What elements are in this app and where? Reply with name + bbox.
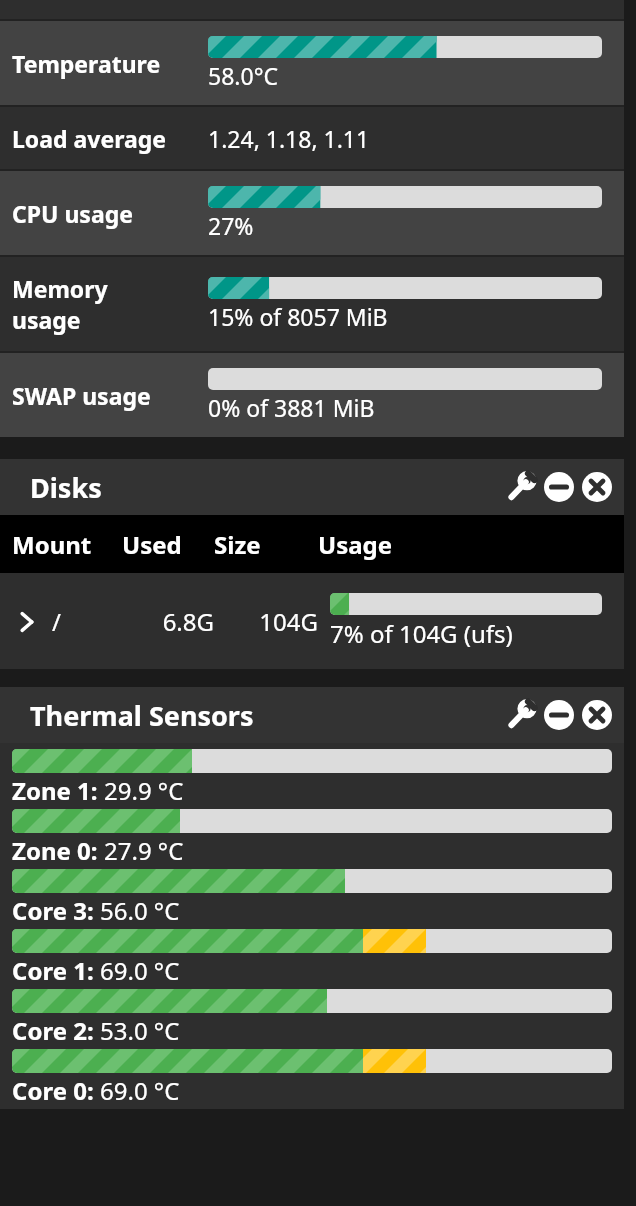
staticText: 0% of 3881 MiB [208, 392, 375, 423]
staticText: 27% [208, 210, 254, 241]
button[interactable]: Minimize [540, 696, 578, 734]
other: Expand [12, 607, 42, 637]
button[interactable]: Expand [0, 573, 624, 669]
button[interactable]: Zone 1: [0, 749, 624, 809]
staticText: 56.0 °C [100, 894, 180, 927]
staticText: Core 1: [12, 954, 100, 987]
staticText: Core 3: [12, 894, 100, 927]
staticText: 69.0 °C [100, 954, 180, 987]
button[interactable]: Close [578, 468, 616, 506]
button[interactable]: Zone 0: [0, 809, 624, 869]
button[interactable]: Disks [0, 459, 624, 515]
staticText: Size [214, 528, 318, 561]
button[interactable]: Core 1: [0, 929, 624, 989]
button[interactable]: Core 2: [0, 989, 624, 1049]
staticText: Zone 1: [12, 774, 104, 807]
staticText: 1.24, 1.18, 1.11 [208, 123, 370, 154]
button[interactable]: CPU usage [0, 171, 624, 255]
staticText: Temperature [12, 48, 161, 79]
button[interactable]: Load average [0, 107, 624, 169]
staticText: 27.9 °C [104, 834, 184, 867]
staticText: Core 2: [12, 1014, 100, 1047]
staticText: Memory usage [12, 273, 108, 335]
button[interactable]: Settings [502, 696, 540, 734]
button[interactable]: Memory usage [0, 257, 624, 351]
staticText: Mount [12, 528, 122, 561]
button[interactable]: Core 0: [0, 1049, 624, 1109]
button[interactable]: Close [578, 696, 616, 734]
staticText: 69.0 °C [100, 1074, 180, 1107]
button[interactable]: Thermal Sensors [0, 687, 624, 743]
button[interactable]: Minimize [540, 468, 578, 506]
button[interactable]: SWAP usage [0, 353, 624, 437]
staticText: Usage [318, 528, 393, 561]
staticText: SWAP usage [12, 380, 151, 411]
staticText: Thermal Sensors [30, 697, 254, 734]
staticText: Disks [30, 469, 102, 506]
staticText: 58.0°C [208, 60, 279, 91]
staticText: 6.8G [122, 605, 214, 638]
staticText: 29.9 °C [104, 774, 184, 807]
staticText: / [52, 605, 61, 638]
staticText: Zone 0: [12, 834, 104, 867]
staticText: 53.0 °C [100, 1014, 180, 1047]
button[interactable]: Settings [502, 468, 540, 506]
staticText: 7% of 104G (ufs) [330, 617, 513, 650]
staticText: Used [122, 528, 214, 561]
staticText: Load average [12, 123, 167, 154]
staticText: CPU usage [12, 198, 133, 229]
staticText: 104G [222, 605, 318, 638]
staticText: Core 0: [12, 1074, 100, 1107]
button[interactable]: Core 3: [0, 869, 624, 929]
staticText: 15% of 8057 MiB [208, 301, 388, 332]
button[interactable]: Temperature [0, 21, 624, 105]
